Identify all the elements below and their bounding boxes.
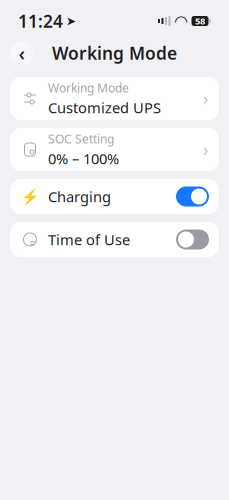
staticText: Charging (48, 187, 111, 206)
staticText: Time of Use (48, 230, 130, 249)
staticText: ➤ (66, 14, 76, 28)
button[interactable]: Time of Use (10, 222, 219, 257)
staticText: ⚡ (21, 188, 39, 205)
staticText: ◠ (175, 12, 187, 30)
staticText: 0% – 100% (48, 149, 119, 168)
button[interactable]: ⚡ (10, 179, 219, 214)
staticText: Customized UPS (48, 98, 161, 117)
staticText: › (203, 138, 208, 161)
button[interactable]: Working Mode (10, 77, 219, 120)
staticText: 58 (195, 15, 205, 27)
button[interactable]: Back (8, 39, 36, 67)
staticText: 11:24 (18, 9, 63, 32)
staticText: ‹ (18, 40, 25, 66)
staticText: Working Mode (48, 80, 129, 96)
button[interactable]: SOC Setting (10, 128, 219, 171)
staticText: Working Mode (52, 41, 177, 64)
staticText: › (203, 87, 208, 110)
staticText: SOC Setting (48, 131, 114, 147)
